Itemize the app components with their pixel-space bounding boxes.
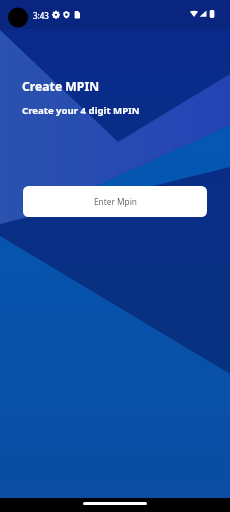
other: Home [0,498,230,512]
staticText: 3:43 [33,10,49,21]
staticText: Create your 4 digit MPIN [22,104,140,117]
button[interactable]: Enter Mpin [23,186,207,217]
staticText: Enter Mpin [94,196,137,207]
staticText: Create MPIN [22,78,100,95]
